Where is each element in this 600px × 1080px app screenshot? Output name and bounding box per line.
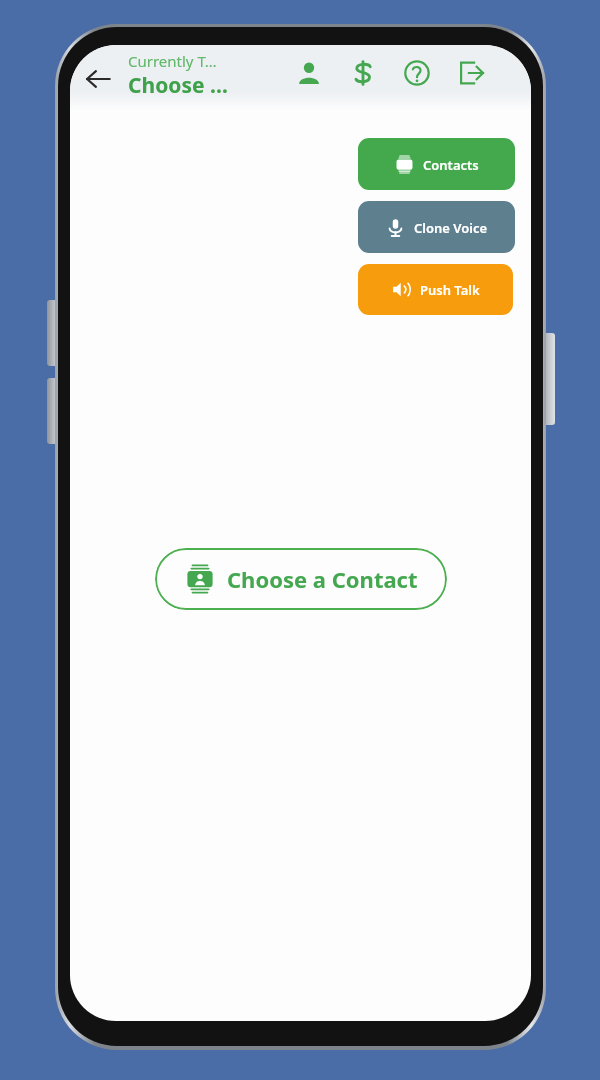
staticText: Currently T… (128, 51, 217, 71)
button[interactable]: Payments (344, 54, 382, 92)
button[interactable]: Clone Voice (358, 201, 515, 253)
button[interactable]: Back (76, 57, 120, 101)
button[interactable]: Contacts (358, 138, 515, 190)
staticText: Choose a Contact (227, 564, 418, 594)
staticText: Push Talk (420, 281, 480, 299)
button[interactable]: Profile (290, 54, 328, 92)
button[interactable]: Choose a Contact (155, 548, 447, 610)
button[interactable]: Push Talk (358, 264, 513, 315)
staticText: Clone Voice (414, 219, 488, 237)
button[interactable]: Log out (452, 54, 490, 92)
staticText: Contacts (423, 156, 479, 174)
staticText: Choose … (128, 71, 228, 100)
button[interactable]: Help (398, 54, 436, 92)
